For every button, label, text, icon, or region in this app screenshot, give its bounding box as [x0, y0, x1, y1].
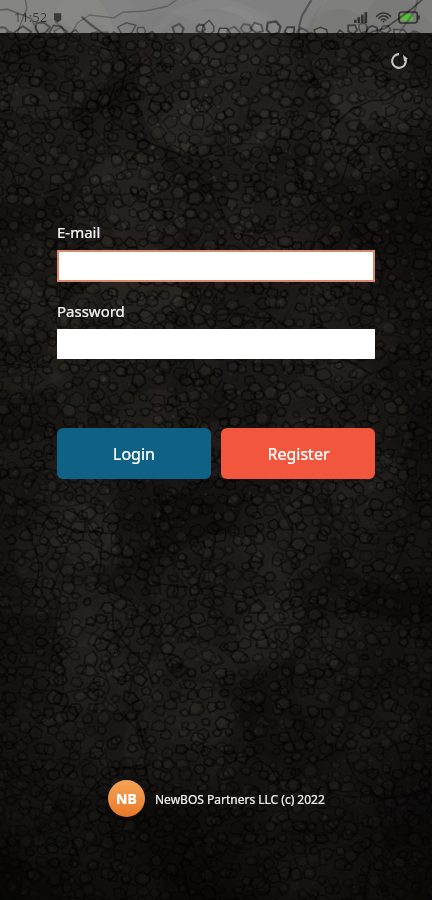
staticText: NB [116, 789, 137, 808]
button[interactable]: Login [57, 428, 211, 479]
button[interactable]: NB [106, 778, 327, 819]
staticText: Register [267, 443, 330, 465]
staticText: Password [57, 301, 125, 321]
button[interactable]: Refresh [382, 44, 416, 78]
button[interactable]: Register [221, 428, 375, 479]
button[interactable] [57, 250, 375, 282]
staticText: E-mail [57, 222, 101, 242]
staticText: Login [113, 443, 155, 465]
staticText: NewBOS Partners LLC (c) 2022 [155, 791, 325, 807]
staticText: 11:52 [14, 8, 48, 26]
